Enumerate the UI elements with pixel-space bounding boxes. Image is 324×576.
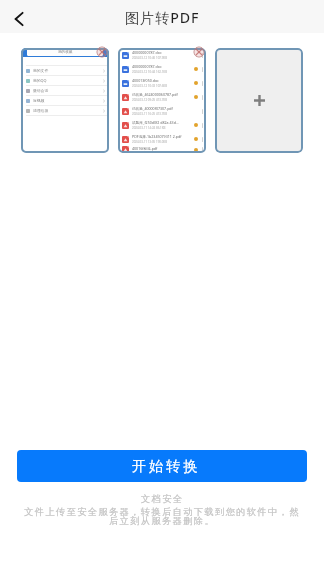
button[interactable]: 我的收藏 <box>21 48 109 153</box>
button[interactable]: 40000000787.doc <box>118 48 206 153</box>
staticText: 开始转换 <box>132 457 200 475</box>
staticText: 微信会话 <box>33 88 49 93</box>
staticText: 我的文件 <box>33 68 49 73</box>
staticText: 短视频 <box>33 98 45 103</box>
staticText: 40016f程选.pdf <box>132 146 158 151</box>
button[interactable]: 开始转换 <box>17 450 307 482</box>
button[interactable]: Back <box>0 0 38 33</box>
staticText: 40000000787.doc <box>132 50 162 55</box>
button[interactable]: Remove <box>96 46 108 58</box>
staticText: 清理垃圾 <box>33 108 49 113</box>
staticText: 2024-03-12 09:25 413.7KB <box>132 98 168 102</box>
staticText: 试题库_f250d0f2 d82a 43d… <box>132 120 179 125</box>
staticText: 2024-03-12 10:44 162.1KB <box>132 70 168 74</box>
staticText: PDF选择-1b2345079311 2.pdf <box>132 134 182 139</box>
staticText: 400013f050.doc <box>132 78 159 83</box>
staticText: 2024-03-12 10:33 107.6KB <box>132 84 168 88</box>
staticText: 2024-03-12 10:46 107.9KB <box>132 56 168 60</box>
button[interactable]: Add image <box>215 48 303 153</box>
staticText: 已转换_40000f07307.pdf <box>132 106 173 111</box>
staticText: 已转换_4624000060787.pdf <box>132 92 178 97</box>
staticText: 我的QQ <box>33 78 47 83</box>
staticText: 文件上传至安全服务器，转换后自动下载到您的软件中，然后立刻从服务器删除。 <box>21 506 303 527</box>
staticText: 2024-03-11 16:25 413.7KB <box>132 112 168 116</box>
button[interactable]: Remove <box>193 46 205 58</box>
staticText: 2024-03-11 13:05 190.0KB <box>132 140 168 144</box>
staticText: 文档安全 <box>141 493 184 505</box>
staticText: 2024-03-11 14:24 86.1KB <box>132 126 166 130</box>
staticText: 我的收藏 <box>58 50 73 55</box>
staticText: 图片转PDF <box>125 8 200 27</box>
staticText: 40000000787.doc <box>132 64 162 69</box>
